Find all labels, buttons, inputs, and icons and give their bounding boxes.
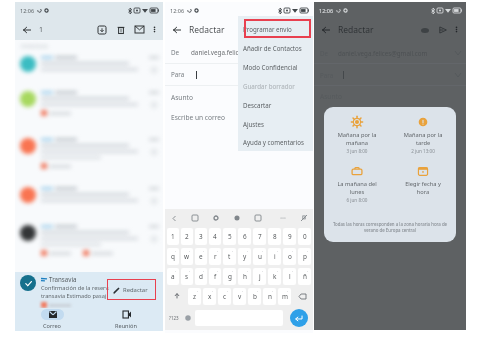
button[interactable]: u [253,248,266,265]
button[interactable]: Send [437,24,449,36]
staticText: g [228,272,232,281]
staticText: f [214,272,217,281]
staticText: ˊ [257,290,259,295]
button[interactable]: Mark as unread [133,23,146,36]
button[interactable]: More options [451,24,462,35]
button[interactable]: La mañana del lunes [324,165,390,203]
button[interactable]: Añadir de Contactos [238,38,313,57]
button[interactable]: ?123 [166,306,182,330]
button[interactable]: Correo [15,308,89,331]
staticText: r [214,252,217,261]
button[interactable]: Guardar borrador [238,76,313,95]
button[interactable]: Elegir fecha y hora [390,165,456,195]
button[interactable]: s [181,268,193,285]
button[interactable]: i [268,248,281,265]
button[interactable]: Archive [95,23,108,36]
button[interactable]: a [167,268,179,285]
button[interactable]: d [195,268,207,285]
button[interactable]: Ajustes [238,114,313,133]
button[interactable]: Delete [114,23,127,36]
staticText: ˊ [217,250,219,255]
button[interactable]: t [223,248,236,265]
button[interactable]: Clipboard [190,213,200,223]
staticText: h [243,272,247,281]
staticText: j [259,272,261,281]
button[interactable]: More options [149,24,160,35]
button[interactable]: Enter [290,309,308,327]
button[interactable]: 2 [181,228,193,245]
button[interactable]: j [253,268,266,285]
button[interactable]: Sticker [253,213,263,223]
button[interactable]: g [223,268,236,285]
button[interactable]: 7 [253,228,266,245]
button[interactable]: Backspace [292,286,312,306]
button[interactable]: Mañana por la mañana [324,116,390,154]
button[interactable]: Settings [211,213,221,223]
staticText: Descartar [243,101,272,109]
button[interactable]: 6 [238,228,251,245]
button[interactable]: Reunión [89,308,163,331]
staticText: d [199,272,203,281]
staticText: Guardar borrador [243,82,295,90]
button[interactable]: z [188,288,201,305]
staticText: Anteriores [21,42,48,49]
staticText: ñ [303,272,307,281]
button[interactable]: Emoji [182,306,193,330]
button[interactable]: b [248,288,261,305]
staticText: z [193,292,197,301]
button[interactable]: Ayuda y comentarios [238,133,313,151]
button[interactable]: Modo Confidencial [238,57,313,76]
button[interactable]: o [283,248,296,265]
button[interactable]: Back [20,23,33,36]
button[interactable]: e [195,248,207,265]
staticText: w [184,252,190,261]
button[interactable]: x [203,288,216,305]
button[interactable]: 3 [195,228,207,245]
button[interactable]: v [233,288,246,305]
button[interactable]: Mañana por la tarde [390,116,456,154]
staticText: l [289,272,291,281]
button[interactable]: k [268,268,281,285]
button[interactable]: Attach [419,24,431,36]
staticText: ˊ [277,250,279,255]
button[interactable]: f [209,268,221,285]
button[interactable]: q [167,248,179,265]
button[interactable]: Mute [299,213,309,223]
staticText: o [288,252,292,261]
button[interactable]: Previous [169,213,179,223]
button[interactable]: w [181,248,193,265]
button[interactable]: m [278,288,291,305]
button[interactable]: Redactar [109,282,154,298]
button[interactable]: Shift [166,286,187,306]
button[interactable]: 0 [298,228,311,245]
button[interactable]: n [263,288,276,305]
staticText: 1 [171,232,175,241]
button[interactable]: l [283,268,296,285]
staticText: b [253,292,257,301]
staticText: i [274,252,276,261]
button[interactable]: More [278,213,288,223]
button[interactable]: ñ [298,268,311,285]
button[interactable]: 5 [223,228,236,245]
button[interactable]: Back [170,23,183,36]
staticText: 7 [258,232,262,241]
button[interactable]: 1 [167,228,179,245]
button[interactable]: 9 [283,228,296,245]
button[interactable]: Back [319,23,332,36]
button[interactable]: Descartar [238,95,313,114]
button[interactable]: y [238,248,251,265]
staticText: ˊ [292,250,294,255]
button[interactable]: 8 [268,228,281,245]
staticText: ˊ [307,250,309,255]
button[interactable]: h [238,268,251,285]
button[interactable]: r [209,248,221,265]
button[interactable]: Themes [232,213,242,223]
button[interactable]: p [298,248,311,265]
button[interactable]: 4 [209,228,221,245]
button[interactable]: Programar envío [238,19,313,38]
button[interactable]: c [218,288,231,305]
staticText: ˊ [197,290,199,295]
staticText: Elegir fecha y hora [390,180,456,195]
